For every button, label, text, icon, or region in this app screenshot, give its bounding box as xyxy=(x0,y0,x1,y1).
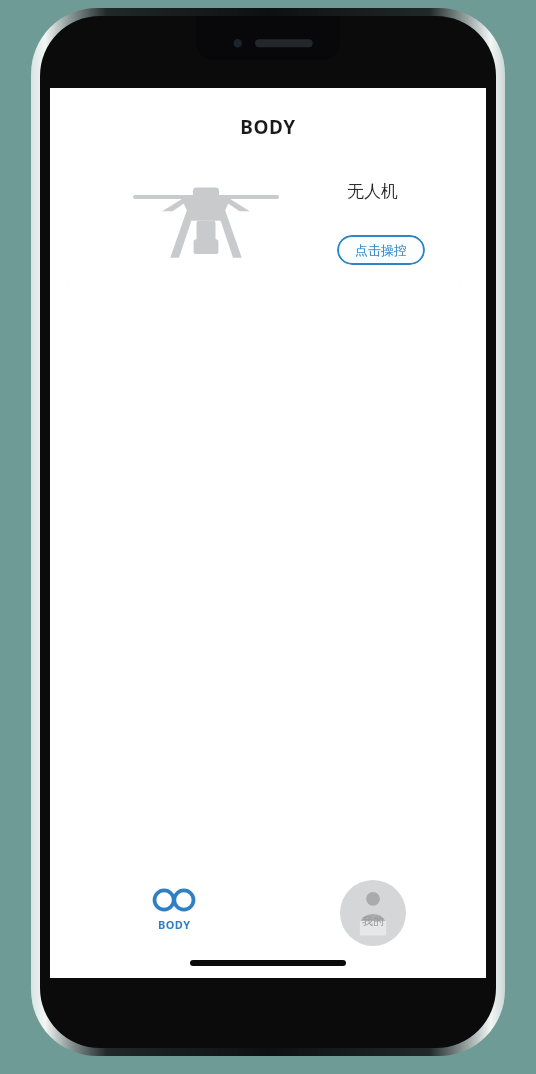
button[interactable]: BODY xyxy=(132,888,216,944)
staticText: BODY xyxy=(158,917,191,932)
button[interactable]: 无人机 xyxy=(67,152,461,294)
button[interactable]: 点击操控 xyxy=(337,235,425,265)
button[interactable]: 我的 xyxy=(340,880,406,946)
staticText: 点击操控 xyxy=(355,242,407,258)
staticText: 我的 xyxy=(362,914,384,928)
staticText: BODY xyxy=(50,114,486,140)
staticText: 无人机 xyxy=(347,181,398,202)
